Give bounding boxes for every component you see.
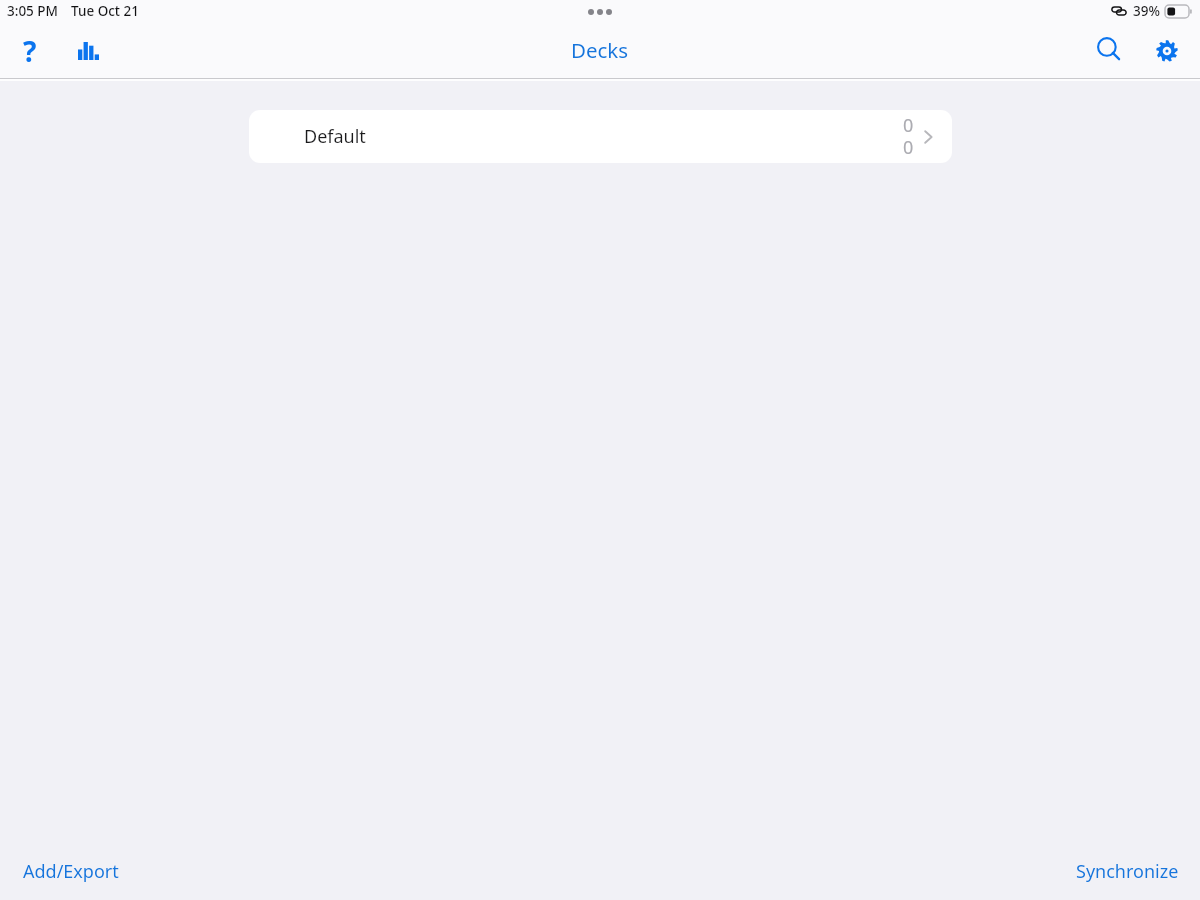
staticText: Synchronize: [1076, 859, 1179, 884]
button[interactable]: Add/Export: [12, 850, 130, 893]
button[interactable]: Search: [1083, 24, 1137, 78]
staticText: Default: [304, 124, 366, 149]
staticText: 39%: [1133, 2, 1160, 20]
button[interactable]: Help: [3, 24, 57, 78]
button[interactable]: Default: [249, 110, 952, 163]
staticText: Tue Oct 21: [71, 2, 139, 20]
staticText: 3:05 PM: [7, 2, 58, 20]
staticText: Add/Export: [23, 859, 119, 884]
staticText: ?: [23, 32, 37, 70]
staticText: Decks: [571, 36, 629, 64]
button[interactable]: Settings: [1140, 24, 1194, 78]
button[interactable]: Synchronize: [1065, 850, 1190, 893]
button[interactable]: Statistics: [61, 24, 115, 78]
staticText: 0: [903, 113, 914, 138]
staticText: 0: [903, 135, 914, 160]
